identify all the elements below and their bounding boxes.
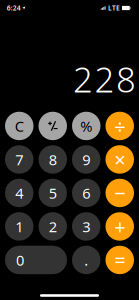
staticText: 5 xyxy=(49,183,57,203)
staticText: 4 xyxy=(15,183,23,203)
button[interactable]: 3 xyxy=(72,212,100,241)
staticText: 0 xyxy=(16,250,24,270)
staticText: . xyxy=(84,250,88,270)
staticText: 9 xyxy=(82,150,90,169)
button[interactable]: 7 xyxy=(5,145,33,174)
staticText: 8 xyxy=(49,150,57,169)
staticText: C xyxy=(15,116,24,136)
staticText: + xyxy=(114,213,125,240)
staticText: 3 xyxy=(82,217,90,236)
staticText: 6:24 xyxy=(7,4,21,12)
button[interactable]: = xyxy=(105,246,134,274)
staticText: ÷ xyxy=(114,113,125,139)
button[interactable]: % xyxy=(72,112,100,140)
button[interactable]: − xyxy=(105,179,134,207)
button[interactable]: 6 xyxy=(72,179,100,207)
button[interactable]: 8 xyxy=(38,145,67,174)
button[interactable]: + xyxy=(105,212,134,241)
staticText: − xyxy=(114,180,125,206)
button[interactable]: Plus minus xyxy=(38,112,67,140)
button[interactable]: 1 xyxy=(5,212,33,241)
staticText: 6 xyxy=(82,183,90,203)
staticText: = xyxy=(114,247,125,273)
staticText: % xyxy=(80,116,92,136)
staticText: LTE xyxy=(108,4,120,12)
button[interactable]: . xyxy=(72,246,100,274)
staticText: 228 xyxy=(73,56,136,102)
button[interactable]: 4 xyxy=(5,179,33,207)
staticText: 7 xyxy=(15,150,23,169)
button[interactable]: C xyxy=(5,112,33,140)
button[interactable]: 2 xyxy=(38,212,67,241)
staticText: 2 xyxy=(49,217,57,236)
button[interactable]: 5 xyxy=(38,179,67,207)
button[interactable]: 9 xyxy=(72,145,100,174)
button[interactable]: 0 xyxy=(5,246,67,274)
button[interactable]: ÷ xyxy=(105,112,134,140)
button[interactable]: × xyxy=(105,145,134,174)
staticText: × xyxy=(114,146,125,173)
staticText: 1 xyxy=(15,217,23,236)
